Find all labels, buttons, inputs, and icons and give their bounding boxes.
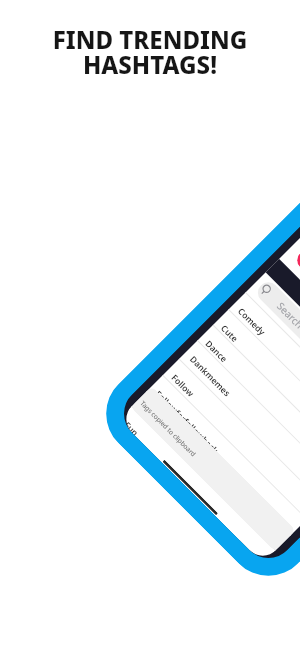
button[interactable]: Funny [130, 391, 291, 551]
staticText: Cute [218, 322, 241, 345]
button[interactable]: Follow [163, 358, 300, 519]
button[interactable]: Cute [212, 309, 300, 469]
button[interactable]: Comedy [229, 292, 300, 452]
button[interactable]: Dance [197, 324, 300, 485]
button[interactable]: Dankmemes [181, 340, 300, 501]
staticText: Followforfollowback [152, 388, 221, 457]
staticText: Dankmemes [187, 353, 233, 399]
button[interactable]: Search [253, 278, 300, 429]
staticText: Comedy [235, 305, 268, 339]
button[interactable]: Fun [118, 406, 276, 563]
staticText: Follow [169, 372, 197, 400]
staticText: Tags copied to clipboard [138, 399, 198, 459]
staticText: Funny [136, 404, 163, 431]
staticText: Dance [203, 338, 230, 365]
staticText: FIND TRENDING HASHTAGS! [0, 23, 300, 81]
staticText: Search [274, 299, 300, 332]
button[interactable]: Followforfollowback [147, 375, 300, 535]
staticText: Fun [124, 419, 141, 436]
